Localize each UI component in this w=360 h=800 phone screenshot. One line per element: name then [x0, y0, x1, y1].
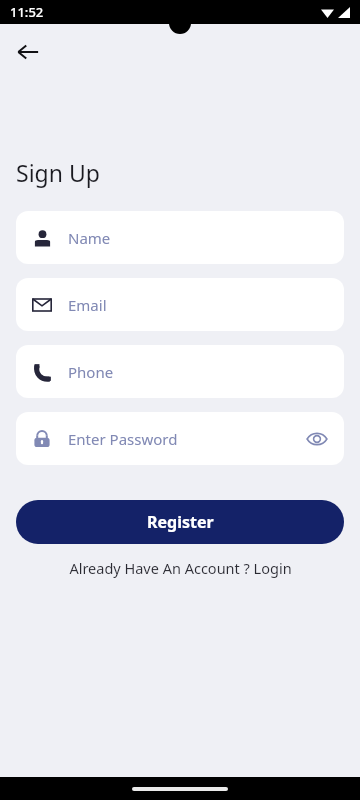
staticText: Already Have An Account ? Login — [69, 558, 292, 578]
staticText: Enter Password — [68, 429, 304, 449]
button[interactable]: Phone — [16, 345, 344, 398]
button[interactable]: Name — [16, 211, 344, 264]
button[interactable]: Back — [8, 32, 48, 72]
button[interactable]: Email — [16, 278, 344, 331]
button[interactable]: Enter Password — [16, 412, 344, 465]
staticText: Email — [68, 295, 330, 315]
button[interactable]: Already Have An Account ? Login — [0, 558, 360, 578]
staticText: Sign Up — [16, 157, 100, 188]
button[interactable]: Show password — [304, 426, 330, 452]
staticText: Phone — [68, 362, 330, 382]
staticText: Name — [68, 228, 330, 248]
button[interactable]: Register — [16, 500, 344, 544]
staticText: 11:52 — [10, 3, 44, 21]
staticText: Register — [147, 511, 214, 533]
